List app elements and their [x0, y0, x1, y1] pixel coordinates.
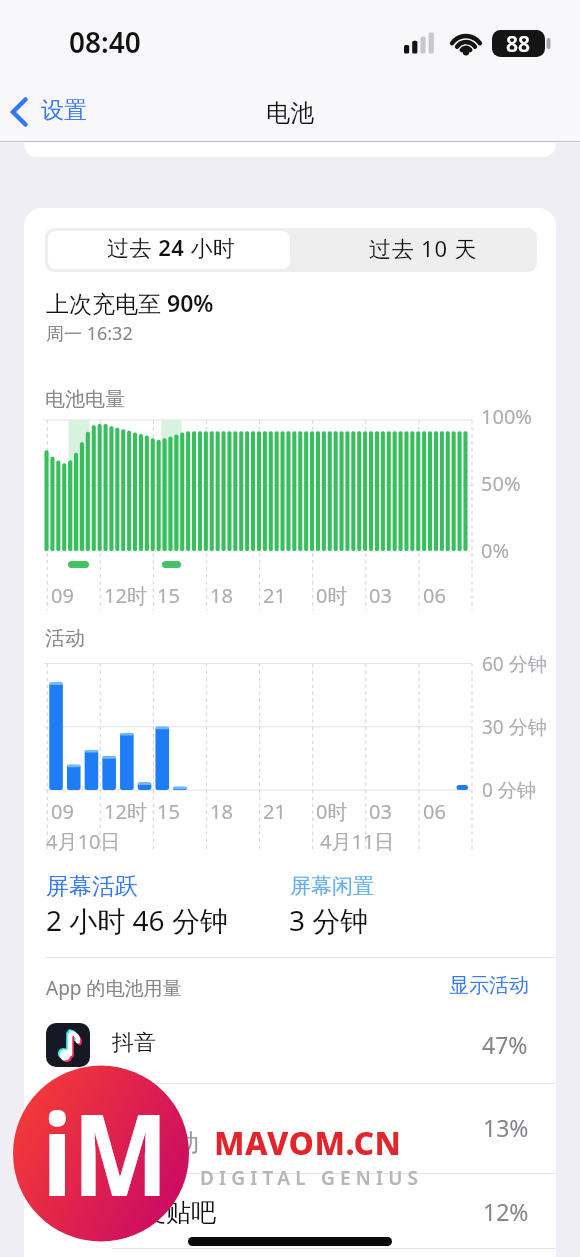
- staticText: 06: [423, 582, 446, 609]
- staticText: MAVOM.CN: [214, 1121, 402, 1165]
- staticText: 12时: [104, 582, 147, 609]
- staticText: 4月11日: [320, 828, 395, 855]
- staticText: 18: [210, 582, 233, 609]
- staticText: 周一 16:32: [46, 321, 133, 346]
- staticText: 0 分钟: [482, 777, 536, 803]
- staticText: 电池: [266, 98, 314, 128]
- staticText: 13%: [483, 1112, 529, 1143]
- staticText: 设置: [41, 96, 87, 125]
- staticText: 4月10日: [46, 828, 121, 855]
- staticText: 屏幕闲置: [290, 873, 374, 899]
- staticText: 50%: [481, 470, 521, 497]
- button[interactable]: 设置: [0, 92, 118, 134]
- staticText: 03: [369, 582, 392, 609]
- staticText: 2 小时 46 分钟: [46, 901, 228, 939]
- staticText: 21: [263, 798, 286, 825]
- staticText: iM: [42, 1075, 169, 1229]
- staticText: 抖音: [112, 1029, 156, 1057]
- staticText: 09: [51, 582, 74, 609]
- staticText: 百度贴吧: [116, 1197, 216, 1228]
- staticText: 60 分钟: [482, 651, 547, 677]
- staticText: App 的电池用量: [46, 975, 182, 1001]
- staticText: 运动: [149, 1127, 199, 1158]
- button[interactable]: [24, 1084, 556, 1173]
- staticText: 30 分钟: [482, 714, 547, 740]
- staticText: 12时: [104, 798, 147, 825]
- button[interactable]: 显示活动: [445, 969, 540, 1001]
- staticText: 15: [157, 582, 180, 609]
- staticText: 活动: [45, 626, 85, 651]
- staticText: 0%: [481, 537, 510, 564]
- staticText: 21: [263, 582, 286, 609]
- button[interactable]: 过去 10 天: [291, 231, 536, 269]
- button[interactable]: [24, 1001, 556, 1083]
- staticText: 08:40: [69, 23, 141, 61]
- staticText: 过去 10 天: [369, 233, 478, 263]
- staticText: 100%: [481, 403, 532, 430]
- staticText: 09: [51, 798, 74, 825]
- staticText: 03: [369, 798, 392, 825]
- staticText: 上次充电至 90%: [46, 287, 214, 318]
- staticText: 3 分钟: [289, 901, 369, 939]
- staticText: 电池电量: [45, 387, 125, 412]
- staticText: 0时: [316, 582, 348, 609]
- staticText: 显示活动: [449, 973, 529, 998]
- button[interactable]: 过去 24 小时: [48, 231, 290, 269]
- staticText: 88: [506, 30, 531, 57]
- staticText: DIGITAL GENIUS: [200, 1165, 424, 1191]
- staticText: 15: [157, 798, 180, 825]
- staticText: 屏幕活跃: [46, 872, 138, 901]
- button[interactable]: [24, 1174, 556, 1248]
- staticText: 18: [210, 798, 233, 825]
- staticText: 47%: [482, 1029, 528, 1060]
- staticText: 12%: [483, 1196, 529, 1227]
- staticText: 06: [423, 798, 446, 825]
- staticText: 0时: [316, 798, 348, 825]
- staticText: 过去 24 小时: [107, 232, 236, 262]
